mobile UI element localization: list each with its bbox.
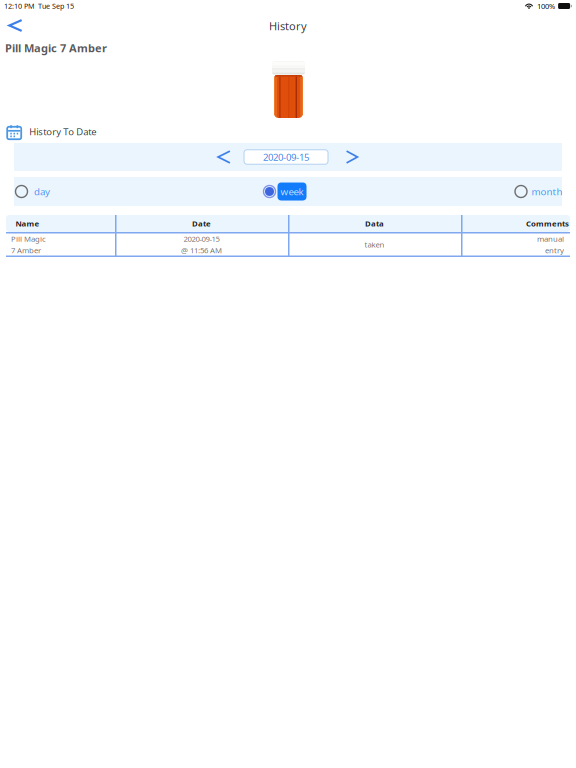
staticText: week xyxy=(280,185,303,198)
staticText: 2020-09-15 xyxy=(263,150,309,164)
staticText: Tue Sep 15 xyxy=(38,1,74,11)
staticText: 12:10 PM xyxy=(4,1,35,11)
staticText: Name xyxy=(15,218,39,229)
staticText: taken xyxy=(364,239,384,250)
staticText: Comments xyxy=(526,218,569,229)
staticText: manual xyxy=(537,233,564,244)
button[interactable]: day xyxy=(15,177,50,206)
button[interactable]: Back xyxy=(0,12,30,38)
button[interactable]: 2020-09-15 xyxy=(244,150,328,164)
button[interactable]: week xyxy=(263,177,306,206)
staticText: 7 Amber xyxy=(11,245,41,255)
staticText: History To Date xyxy=(29,125,96,138)
staticText: History xyxy=(269,18,307,34)
staticText: day xyxy=(34,185,50,198)
button[interactable]: month xyxy=(514,177,562,206)
staticText: Pill Magic 7 Amber xyxy=(5,40,107,56)
staticText: Data xyxy=(365,218,384,229)
staticText: 100% xyxy=(537,1,555,11)
staticText: 2020-09-15 xyxy=(183,233,219,244)
staticText: month xyxy=(531,185,562,198)
staticText: Pill Magic xyxy=(11,233,46,244)
staticText: Date xyxy=(192,218,211,229)
button[interactable]: Previous period xyxy=(212,145,236,169)
staticText: @ 11:56 AM xyxy=(181,245,222,255)
staticText: entry xyxy=(545,245,564,255)
button[interactable]: Next period xyxy=(340,145,364,169)
